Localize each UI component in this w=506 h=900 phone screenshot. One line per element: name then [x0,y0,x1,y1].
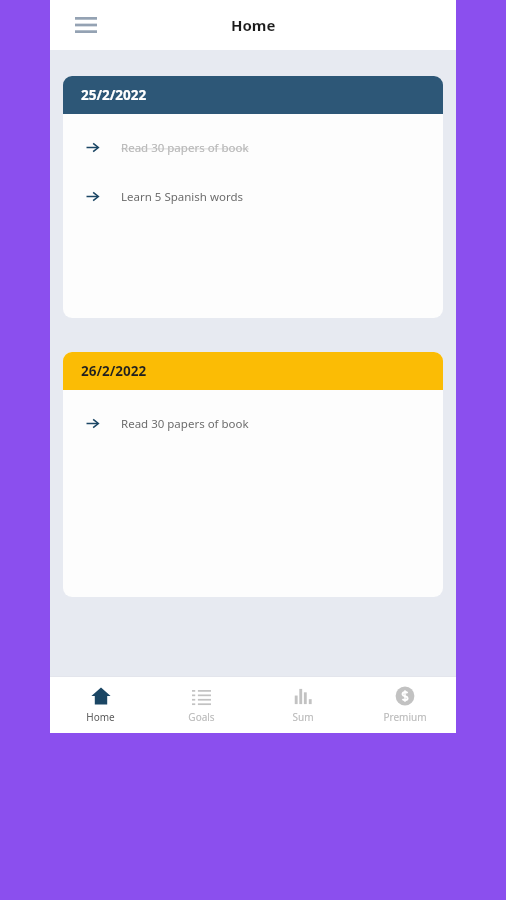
staticText: Home [231,15,276,35]
button[interactable]: Open navigation menu [66,5,106,45]
button[interactable]: Read 30 papers of book [63,123,443,172]
staticText: Read 30 papers of book [121,140,249,156]
staticText: 26/2/2022 [81,362,147,380]
button[interactable]: Read 30 papers of book [63,399,443,448]
staticText: Read 30 papers of book [121,416,249,432]
button[interactable]: Home [50,677,151,733]
button[interactable]: Sum [252,677,354,733]
button[interactable]: 25/2/2022 [63,76,443,318]
staticText: Learn 5 Spanish words [121,189,243,205]
staticText: Premium [383,710,427,724]
staticText: Sum [292,710,314,724]
staticText: Goals [188,710,215,724]
button[interactable]: Goals [151,677,252,733]
staticText: 25/2/2022 [81,86,147,104]
button[interactable]: Learn 5 Spanish words [63,172,443,221]
button[interactable]: 26/2/2022 [63,352,443,597]
button[interactable]: Premium [354,677,456,733]
staticText: Home [86,710,115,724]
